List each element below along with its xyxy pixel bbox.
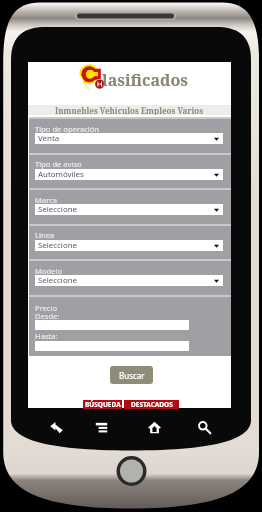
button[interactable]: Menu (88, 414, 114, 440)
staticText: Automóviles (38, 169, 84, 180)
staticText: BÚSQUEDA (85, 400, 121, 409)
button[interactable]: Search (191, 414, 217, 440)
staticText: Tipo de aviso (35, 159, 82, 169)
staticText: Linea (35, 230, 55, 240)
staticText: Inmuebles Vehiculos Empleos Varios (55, 105, 204, 115)
staticText: Seleccione (38, 275, 77, 286)
button[interactable]: Seleccione (35, 275, 223, 286)
button[interactable]: Automóviles (35, 169, 223, 180)
button[interactable]: Venta (35, 133, 223, 144)
button[interactable]: Seleccione (35, 240, 223, 251)
staticText: Seleccione (38, 204, 77, 215)
button[interactable]: Buscar (110, 366, 153, 384)
button[interactable]: Home (141, 414, 167, 440)
staticText: Seleccione (38, 240, 77, 251)
staticText: Modelo (35, 266, 62, 276)
staticText: Precio (35, 303, 58, 313)
staticText: DESTACADOS (131, 400, 173, 409)
staticText: Buscar (119, 370, 145, 381)
button[interactable]: DESTACADOS (124, 400, 179, 409)
staticText: Marca (35, 195, 58, 205)
staticText: Tipo de operación (35, 124, 100, 134)
button[interactable]: Seleccione (35, 204, 223, 215)
staticText: Desde: (35, 311, 60, 321)
button[interactable]: BÚSQUEDA (83, 400, 122, 409)
staticText: Venta (38, 133, 60, 144)
staticText: lasificados (102, 69, 189, 91)
staticText: Hasta: (35, 331, 58, 341)
button[interactable]: Back (43, 414, 69, 440)
